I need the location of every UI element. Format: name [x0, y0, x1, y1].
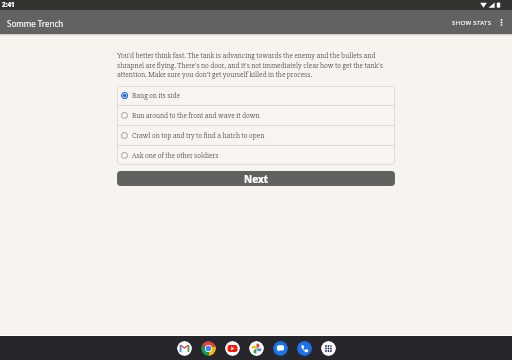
- button[interactable]: Run around to the front and wave it down: [117, 106, 395, 125]
- staticText: You'd better think fast. The tank is adv…: [117, 51, 395, 80]
- staticText: Run around to the front and wave it down: [132, 111, 260, 121]
- button[interactable]: Next: [117, 171, 395, 186]
- staticText: Ask one of the other soldiers: [132, 151, 219, 161]
- staticText: Somme Trench: [7, 18, 64, 29]
- button[interactable]: Gmail: [177, 341, 192, 356]
- button[interactable]: Phone: [297, 341, 312, 356]
- button[interactable]: SHOW STATS: [443, 13, 492, 32]
- staticText: 2:41: [2, 0, 15, 9]
- staticText: Next: [244, 172, 269, 186]
- staticText: Bang on its side: [132, 91, 180, 101]
- button[interactable]: Ask one of the other soldiers: [117, 146, 395, 165]
- button[interactable]: More options: [492, 13, 510, 31]
- button[interactable]: Chrome: [201, 341, 216, 356]
- button[interactable]: Messages: [273, 341, 288, 356]
- button[interactable]: Bang on its side: [117, 86, 395, 105]
- button[interactable]: All apps: [321, 341, 336, 356]
- button[interactable]: Photos: [249, 341, 264, 356]
- staticText: Crawl on top and try to find a hatch to …: [132, 131, 265, 141]
- button[interactable]: Crawl on top and try to find a hatch to …: [117, 126, 395, 145]
- button[interactable]: YouTube: [225, 341, 240, 356]
- staticText: SHOW STATS: [452, 18, 492, 26]
